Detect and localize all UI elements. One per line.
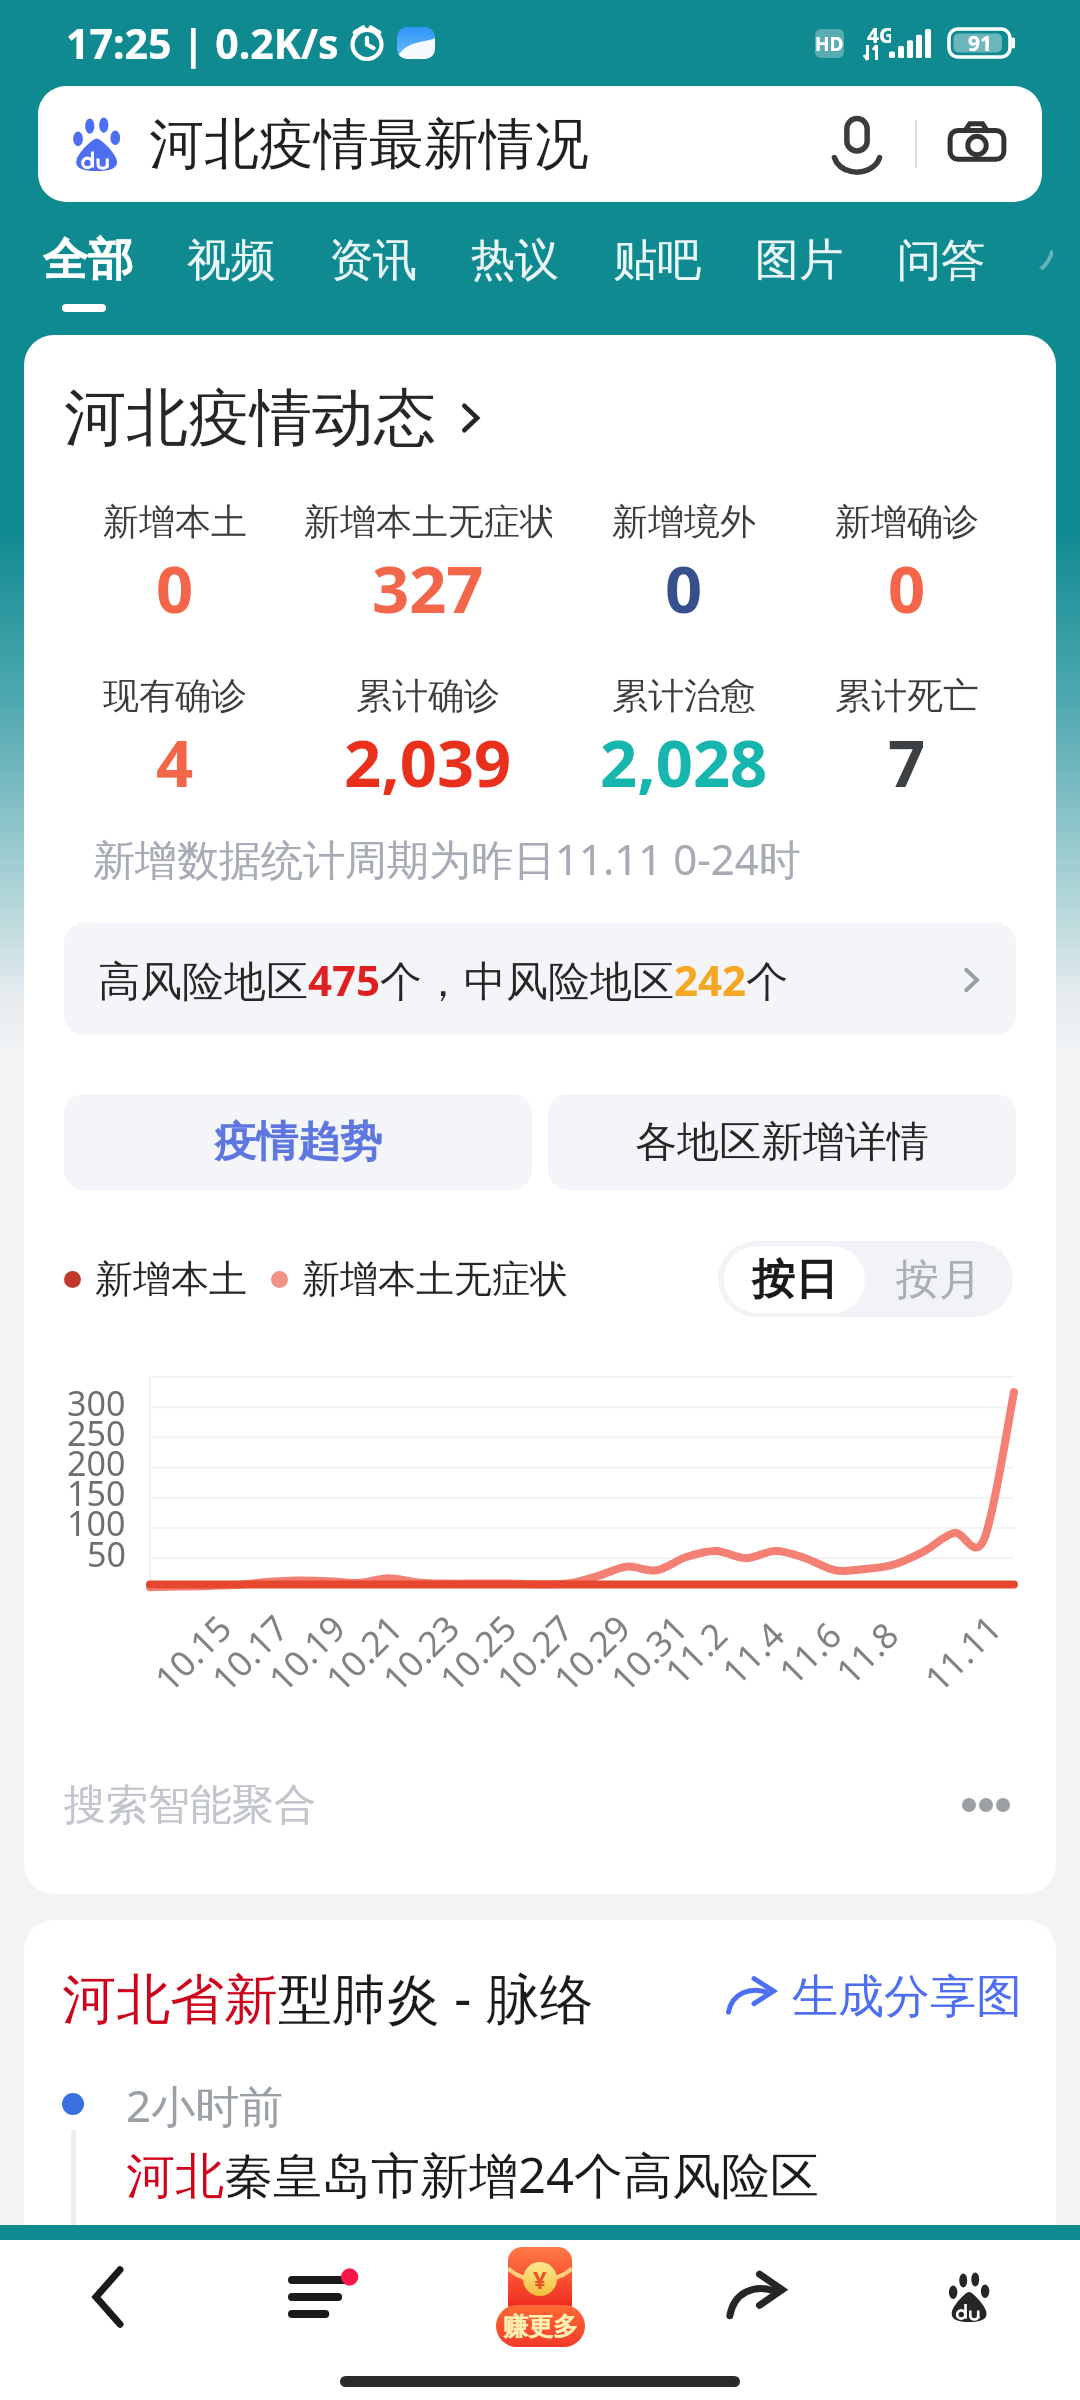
staticText: 全部 [43,232,133,289]
button[interactable]: 生成分享图 [726,1968,1022,2026]
staticText: 河北秦皇岛市新增24个高风险区 [126,2141,820,2208]
staticText: 11.6 [768,1611,852,1695]
staticText: 150 [67,1470,126,1510]
staticText: 11.2 [654,1611,738,1695]
button[interactable]: 河北疫情动态 [64,379,500,457]
button[interactable]: 热议 [444,228,586,292]
staticText: 10.25 [429,1604,527,1702]
staticText: 河北疫情动态 [64,379,436,457]
staticText: 2小时前 [126,2075,284,2135]
staticText: 10.31 [600,1604,698,1702]
button[interactable]: Baidu home [864,2240,1080,2354]
staticText: 11.8 [825,1611,909,1695]
staticText: HD [815,31,844,57]
button[interactable]: 按月 [865,1246,1013,1313]
button[interactable]: 小 [1012,228,1080,292]
staticText: 贴吧 [613,233,701,288]
staticText: 新增本土 [103,499,247,544]
staticText: 11.4 [711,1611,795,1695]
staticText: 资讯 [329,233,417,288]
staticText: 0 [888,544,926,633]
staticText: 250 [67,1410,126,1450]
button[interactable]: More options [952,1788,1020,1822]
button[interactable]: 高风险地区475个，中风险地区242个 [64,923,1016,1035]
staticText: 2,039 [344,718,512,807]
staticText: 4 [156,718,194,807]
staticText: 新增确诊 [835,499,979,544]
staticText: 4G [867,21,891,50]
staticText: 0 [156,544,194,633]
staticText: 11.11 [914,1604,1012,1702]
button[interactable]: Earn more [432,2240,648,2354]
staticText: 新增数据统计周期为昨日11.11 0-24时 [93,830,801,887]
staticText: 累计确诊 [356,673,500,718]
button[interactable]: 资讯 [302,228,444,292]
button[interactable]: 图片 [728,228,870,292]
staticText: 10.27 [486,1604,584,1702]
button[interactable]: 全部 [16,228,160,292]
button[interactable]: 疫情趋势 [64,1094,532,1190]
staticText: 累计治愈 [612,673,756,718]
button[interactable]: 问答 [870,228,1012,292]
staticText: 热议 [471,233,559,288]
staticText: 新增本土 [95,1255,247,1303]
staticText: 300 [67,1380,126,1420]
button[interactable]: Menu [216,2240,432,2354]
staticText: 10.23 [372,1604,470,1702]
staticText: 200 [67,1440,126,1480]
staticText: 新增本土无症状 [302,1255,568,1303]
button[interactable]: Back [0,2240,216,2354]
staticText: 17:25 | 0.2K/s [66,15,339,71]
staticText: 新增本土无症状 [304,499,552,544]
button[interactable]: 视频 [160,228,302,292]
staticText: 10.21 [315,1604,413,1702]
staticText: 河北疫情最新情况 [149,110,589,179]
staticText: 新增境外 [612,499,756,544]
button[interactable]: 河北疫情最新情况 [38,86,1042,202]
staticText: 按月 [896,1253,982,1307]
staticText: 2,028 [600,718,768,807]
button[interactable]: 各地区新增详情 [548,1094,1016,1190]
staticText: 0 [665,544,703,633]
staticText: 图片 [755,233,843,288]
staticText: 10.19 [258,1604,356,1702]
button[interactable]: Share [648,2240,864,2354]
staticText: 91 [968,29,993,57]
staticText: 生成分享图 [792,1968,1022,2026]
staticText: 各地区新增详情 [635,1116,929,1169]
staticText: 小 [1039,233,1053,288]
staticText: 赚更多 [503,2311,578,2342]
button[interactable]: 按日 [724,1246,865,1313]
staticText: 现有确诊 [103,673,247,718]
staticText: 10.15 [144,1604,242,1702]
staticText: ¥ [533,2263,547,2296]
staticText: 疫情趋势 [214,1116,382,1169]
staticText: 7 [888,718,926,807]
staticText: 高风险地区475个，中风险地区242个 [98,951,789,1008]
staticText: 50 [87,1531,126,1571]
staticText: 10.17 [201,1604,299,1702]
staticText: 河北省新型肺炎 - 脉络 [62,1960,594,2034]
staticText: 327 [372,544,484,633]
button[interactable]: 贴吧 [586,228,728,292]
staticText: 问答 [897,233,985,288]
staticText: 累计死亡 [835,673,979,718]
staticText: 按日 [752,1253,838,1307]
staticText: 100 [67,1500,126,1540]
staticText: 10.29 [543,1604,641,1702]
staticText: 搜索智能聚合 [64,1779,316,1832]
staticText: 视频 [187,233,275,288]
